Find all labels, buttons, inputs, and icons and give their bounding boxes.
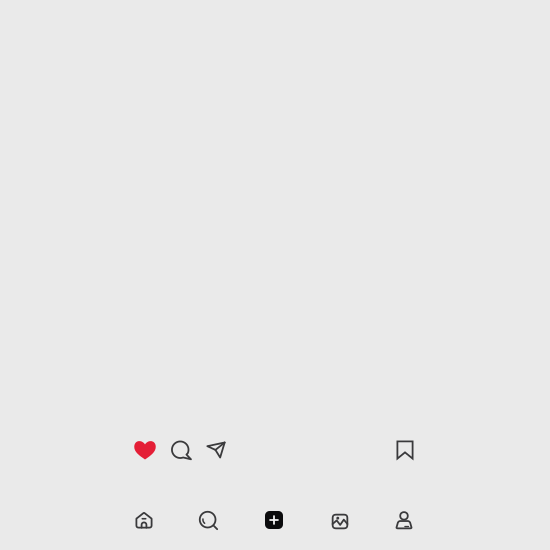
button[interactable]: Save	[385, 430, 425, 470]
button[interactable]: Reels	[318, 499, 362, 543]
button[interactable]: Comment	[161, 431, 201, 471]
button[interactable]: Home	[122, 498, 166, 542]
button[interactable]: Like	[125, 430, 165, 470]
button[interactable]: Profile	[382, 498, 426, 542]
button[interactable]: Share	[196, 430, 236, 470]
button[interactable]: Search	[186, 498, 230, 542]
button[interactable]: Create	[252, 498, 296, 542]
